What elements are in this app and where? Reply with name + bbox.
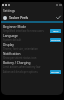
staticText: Beginner Mode — [3, 25, 27, 29]
staticText: Tasker Prefs — [9, 15, 29, 20]
button[interactable]: CHANGE — [50, 38, 61, 42]
staticText: Battery / Charging — [3, 61, 31, 65]
staticText: HELP — [53, 30, 59, 33]
button[interactable]: CONFIG — [50, 70, 61, 74]
button[interactable]: HELP — [50, 29, 61, 33]
button[interactable]: Advanced developer options — [3, 70, 61, 74]
staticText: System default — [3, 38, 22, 42]
button[interactable]: System default — [3, 38, 61, 42]
staticText: Limit actions when battery low — [3, 65, 41, 69]
other: Selected — [56, 15, 61, 20]
button[interactable]: Tasker Prefs — [1, 14, 63, 21]
staticText: Notification — [3, 52, 21, 56]
staticText: Show persistent status icon — [3, 56, 37, 60]
staticText: CHANGE — [51, 39, 60, 42]
staticText: CONFIG — [51, 71, 60, 74]
staticText: Simplified interface for new users — [3, 29, 44, 33]
staticText: Advanced developer options — [3, 70, 38, 74]
staticText: Language — [3, 34, 18, 38]
staticText: Theme, font size, orientation — [3, 47, 38, 51]
button[interactable]: Simplified interface for new users — [3, 29, 61, 33]
staticText: Display — [3, 43, 14, 47]
staticText: Settings — [3, 9, 16, 13]
